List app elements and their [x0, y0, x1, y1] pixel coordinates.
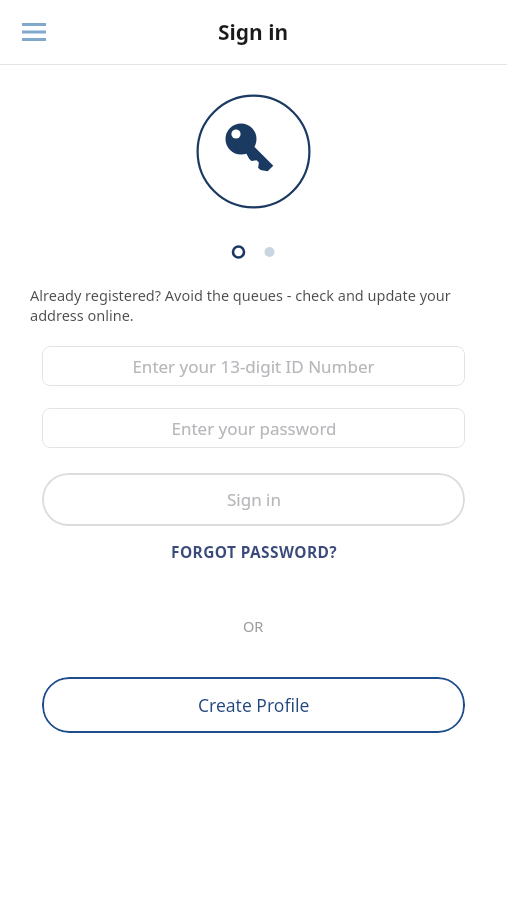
button[interactable]: Enter your password — [42, 408, 465, 448]
staticText: Sign in — [218, 18, 289, 47]
button[interactable]: Menu — [10, 8, 58, 56]
staticText: OR — [243, 616, 264, 636]
other: Key — [196, 94, 311, 209]
button[interactable]: FORGOT PASSWORD? — [159, 537, 349, 566]
staticText: Enter your password — [171, 417, 337, 440]
staticText: Create Profile — [198, 693, 310, 717]
button[interactable]: Sign in — [42, 473, 465, 526]
staticText: Enter your 13-digit ID Number — [132, 355, 375, 378]
button[interactable]: Create Profile — [42, 677, 465, 733]
staticText: FORGOT PASSWORD? — [171, 541, 337, 562]
button[interactable]: Enter your 13-digit ID Number — [42, 346, 465, 386]
staticText: Already registered? Avoid the queues - c… — [30, 285, 477, 325]
staticText: Sign in — [227, 488, 281, 511]
